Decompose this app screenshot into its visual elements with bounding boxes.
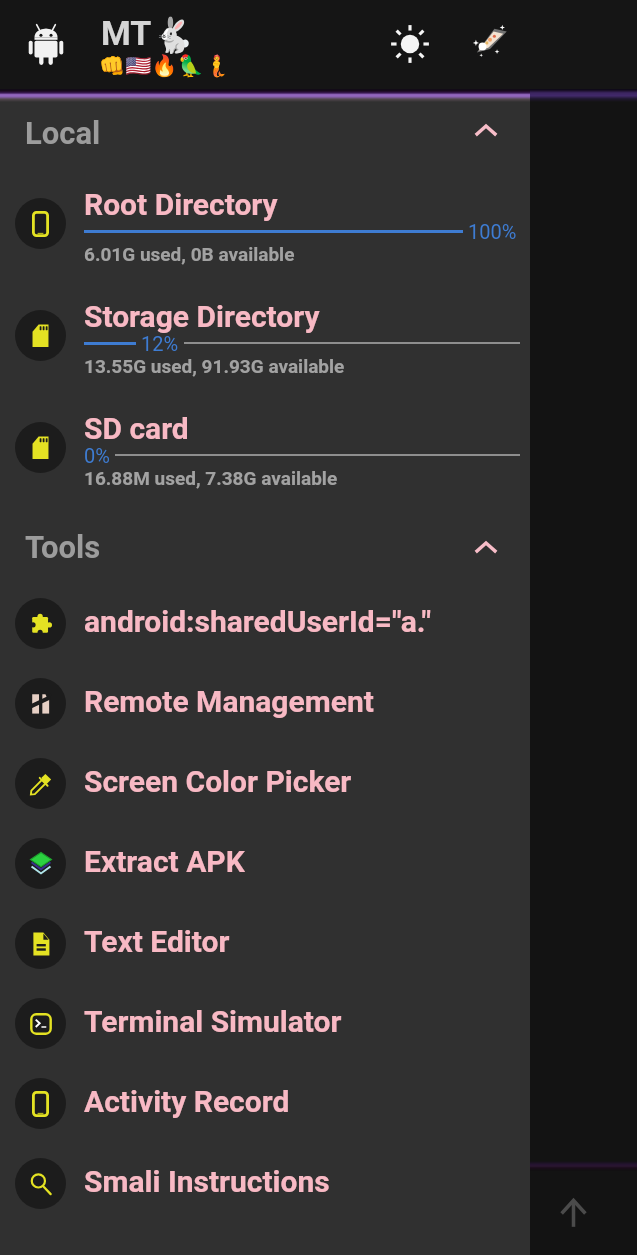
staticText: Activity Record <box>84 1084 290 1119</box>
staticText: Tools <box>25 529 101 565</box>
button[interactable]: Root Directory <box>0 177 530 289</box>
staticText: Storage Directory <box>84 299 320 334</box>
button[interactable]: Menu <box>14 12 78 76</box>
staticText: 100% <box>468 220 517 243</box>
staticText: Text Editor <box>84 924 230 959</box>
staticText: Remote Management <box>84 684 374 719</box>
staticText: 0% <box>84 444 110 467</box>
button[interactable]: Text Editor <box>0 901 530 981</box>
staticText: Root Directory <box>84 187 278 222</box>
button[interactable]: Tools <box>0 513 530 581</box>
button[interactable]: Brightness <box>378 12 442 76</box>
staticText: SD card <box>84 411 189 446</box>
staticText: 16.88M used, 7.38G available <box>84 467 338 489</box>
staticText: Extract APK <box>84 844 245 879</box>
staticText: Terminal Simulator <box>84 1004 342 1039</box>
button[interactable]: Screen Color Picker <box>0 741 530 821</box>
staticText: 🐇 <box>152 15 195 55</box>
button[interactable]: Storage Directory <box>0 289 530 401</box>
staticText: 12% <box>141 332 179 355</box>
button[interactable]: Scroll to top <box>543 1183 603 1243</box>
staticText: Local <box>25 115 101 151</box>
button[interactable]: Remote Management <box>0 661 530 741</box>
staticText: 👊🇺🇸🔥🦜🧜 <box>99 54 230 79</box>
button[interactable]: SD card <box>0 401 530 513</box>
button[interactable]: Extract APK <box>0 821 530 901</box>
button[interactable]: android:sharedUserId="a." <box>0 581 530 661</box>
button[interactable]: Terminal Simulator <box>0 981 530 1061</box>
button[interactable]: Activity Record <box>0 1061 530 1141</box>
button[interactable]: Comet <box>458 10 522 74</box>
staticText: android:sharedUserId="a." <box>84 604 432 639</box>
staticText: Screen Color Picker <box>84 764 352 799</box>
button[interactable]: Smali Instructions <box>0 1141 530 1221</box>
staticText: Smali Instructions <box>84 1164 330 1199</box>
staticText: 13.55G used, 91.93G available <box>84 355 345 377</box>
staticText: 6.01G used, 0B available <box>84 243 295 265</box>
staticText: MT <box>101 13 152 53</box>
button[interactable]: Local <box>0 102 530 177</box>
